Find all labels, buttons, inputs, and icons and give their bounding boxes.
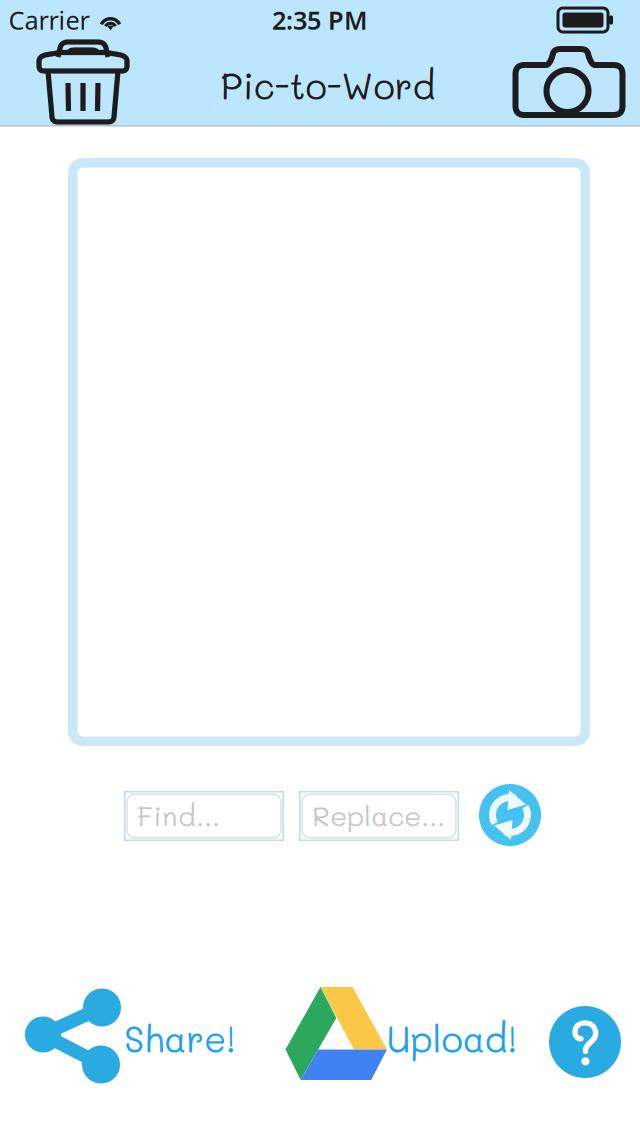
button[interactable]: Refresh [475, 780, 545, 850]
button[interactable]: Share! [124, 1015, 236, 1061]
button[interactable]: Find... [124, 791, 284, 841]
button[interactable]: Camera [506, 39, 631, 124]
staticText: Share! [124, 1015, 236, 1061]
button[interactable]: Upload! [386, 1015, 517, 1061]
button[interactable]: Delete [28, 32, 138, 132]
staticText: Carrier [8, 3, 89, 37]
button[interactable]: Share [23, 984, 123, 1085]
staticText: Upload! [386, 1015, 517, 1061]
button[interactable]: Google Drive [285, 987, 387, 1080]
staticText: Find... [137, 797, 220, 833]
button[interactable]: Help [545, 1002, 625, 1082]
staticText: 2:35 PM [272, 3, 368, 37]
button[interactable]: Replace... [299, 791, 459, 841]
staticText: Pic-to-Word [220, 62, 435, 108]
staticText: Replace... [312, 797, 445, 833]
staticText: ? [568, 1002, 601, 1082]
